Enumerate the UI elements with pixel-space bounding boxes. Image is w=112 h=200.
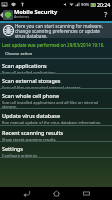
staticText: Scan all files on mounted external stora…	[2, 85, 82, 88]
button[interactable]: Help	[99, 8, 112, 21]
button[interactable]: Scan applications	[0, 58, 112, 73]
button[interactable]: Home	[48, 187, 64, 200]
staticText: 20:24	[97, 1, 111, 8]
staticText: Mobile Security	[14, 8, 58, 16]
staticText: Recent scanning results	[2, 129, 64, 136]
button[interactable]: Settings	[0, 141, 112, 157]
staticText: 90%	[81, 2, 90, 8]
staticText: Run manual update of the virus database …	[2, 120, 102, 125]
staticText: Scan external storages	[2, 77, 61, 84]
staticText: Scan applications	[2, 62, 47, 69]
staticText: Choose action	[5, 51, 33, 57]
staticText: Scan whole cell phone	[2, 92, 59, 99]
staticText: Scan all installed applications and all …	[2, 100, 110, 108]
staticText: Settings	[2, 145, 23, 152]
button[interactable]: Scan whole cell phone	[0, 88, 112, 108]
staticText: Here you can start scanning for malware,…	[15, 23, 110, 38]
staticText: Last update was performed on 29/03/2014 …	[2, 42, 105, 48]
button[interactable]: Recent apps	[78, 187, 94, 200]
button[interactable]: Navigate up	[0, 10, 13, 20]
staticText: ?	[104, 10, 108, 20]
button[interactable]: Update virus database	[0, 108, 112, 125]
staticText: Scan all installed applications.	[2, 70, 57, 73]
button[interactable]: Back	[18, 187, 34, 200]
button[interactable]: Scan external storages	[0, 73, 112, 88]
staticText: Update virus database	[2, 112, 60, 119]
staticText: Show recent scanning results.	[2, 137, 57, 141]
staticText: Configure antivirus.	[2, 153, 38, 157]
button[interactable]: Recent scanning results	[0, 125, 112, 141]
staticText: Antivirus	[14, 14, 29, 19]
